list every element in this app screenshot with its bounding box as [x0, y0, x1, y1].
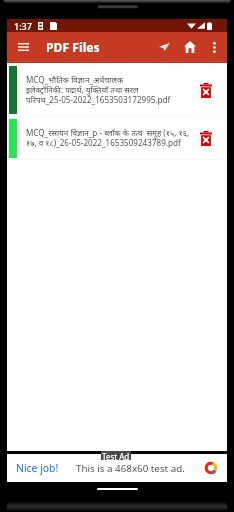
button[interactable]: Delete file — [193, 75, 219, 105]
staticText: This is a 468x60 test ad. — [76, 462, 185, 475]
button[interactable]: Open navigation drawer — [15, 34, 32, 60]
button[interactable]: More options — [203, 33, 225, 61]
staticText: MCQ_रसायन विज्ञान_p - ब्लॉक के तत्व समूह… — [26, 127, 193, 149]
button[interactable]: MCQ_रसायन विज्ञान_p - ब्लॉक के तत्व समूह… — [7, 117, 227, 159]
button[interactable]: Home — [177, 33, 203, 61]
staticText: MCQ_भौतिक विज्ञान_अर्धचालक इलेक्ट्रॉनिकी… — [26, 74, 193, 106]
button[interactable]: Share — [151, 33, 177, 61]
button[interactable]: Nice job! — [16, 461, 59, 475]
button[interactable]: MCQ_भौतिक विज्ञान_अर्धचालक इलेक्ट्रॉनिकी… — [7, 63, 227, 116]
staticText: Test Ad — [102, 451, 130, 460]
button[interactable]: Delete file — [193, 123, 219, 153]
staticText: 1:37 — [14, 20, 32, 32]
staticText: PDF Files — [46, 39, 100, 56]
